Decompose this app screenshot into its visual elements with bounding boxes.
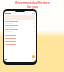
button[interactable] <box>5 25 35 28</box>
button[interactable] <box>5 40 35 42</box>
button[interactable] <box>5 13 35 14</box>
button[interactable]: Add <box>32 55 35 58</box>
staticText: Recommended Kitchen <box>15 1 50 5</box>
button[interactable] <box>5 29 35 32</box>
button[interactable] <box>5 21 35 24</box>
staticText: for you <box>27 5 38 9</box>
button[interactable] <box>5 37 35 39</box>
button[interactable] <box>5 34 35 36</box>
button[interactable] <box>5 43 35 45</box>
